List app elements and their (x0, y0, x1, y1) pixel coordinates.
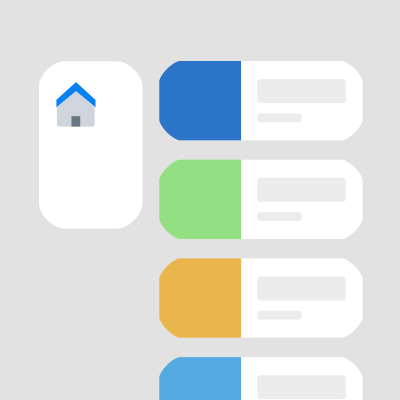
button[interactable]: List item (159, 357, 363, 400)
button[interactable]: Home (39, 61, 142, 229)
button[interactable]: List item (159, 258, 363, 338)
button[interactable]: List item (159, 160, 363, 239)
button[interactable]: List item (159, 61, 363, 140)
